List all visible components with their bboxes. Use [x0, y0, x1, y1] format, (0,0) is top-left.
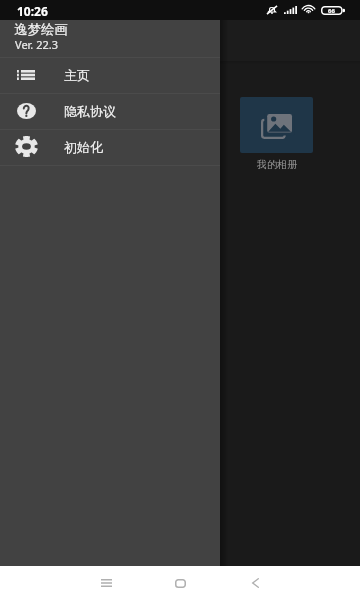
- staticText: 我的相册: [257, 158, 297, 171]
- staticText: 66: [328, 7, 335, 15]
- staticText: 隐私协议: [64, 103, 116, 119]
- button[interactable]: 我的相册: [240, 97, 313, 153]
- staticText: 初始化: [64, 139, 103, 155]
- staticText: 逸梦绘画: [14, 21, 68, 38]
- button[interactable]: Recent apps: [80, 566, 132, 600]
- staticText: 主页: [64, 67, 90, 83]
- button[interactable]: Back: [229, 566, 281, 600]
- staticText: Ver. 22.3: [15, 37, 58, 52]
- button[interactable]: 初始化: [0, 130, 220, 165]
- button[interactable]: 主页: [0, 58, 220, 93]
- button[interactable]: Home: [154, 566, 206, 600]
- button[interactable]: 隐私协议: [0, 94, 220, 129]
- staticText: 10:26: [17, 3, 48, 19]
